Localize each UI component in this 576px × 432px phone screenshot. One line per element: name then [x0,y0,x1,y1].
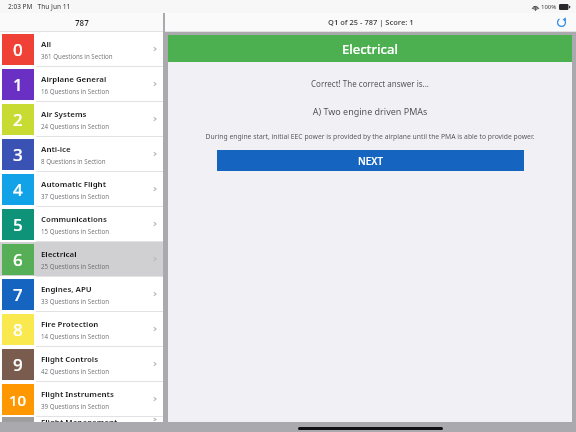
button[interactable]: 1 [0,67,163,101]
staticText: 5 [13,213,23,236]
staticText: 3 [13,143,23,166]
staticText: 14 Questions in Section [41,332,110,340]
staticText: A) Two engine driven PMAs [168,105,572,117]
staticText: 2 [13,108,23,131]
button[interactable]: Refresh [554,15,568,29]
button[interactable]: 5 [0,207,163,241]
staticText: Q1 of 25 - 787 | Score: 1 [328,17,414,27]
button[interactable]: 0 [0,32,163,66]
staticText: 8 Questions in Section [41,157,106,165]
staticText: 24 Questions in Section [41,122,110,130]
staticText: Electrical [342,40,398,58]
staticText: Air Systems [41,109,87,120]
button[interactable]: 10 [0,382,163,416]
button[interactable]: 9 [0,347,163,381]
staticText: 1 [13,73,23,96]
staticText: 8 [13,318,23,341]
staticText: 6 [13,248,23,271]
staticText: 787 [75,17,89,28]
staticText: 25 Questions in Section [41,262,110,270]
staticText: 7 [13,283,23,306]
button[interactable]: NEXT [217,150,524,171]
staticText: All [41,39,52,50]
button[interactable]: 2 [0,102,163,136]
staticText: 0 [13,38,23,61]
staticText: 42 Questions in Section [41,367,110,375]
staticText: Automatic Flight [41,179,107,190]
staticText: 361 Questions in Section [41,52,113,60]
staticText: 10 [9,390,27,410]
button[interactable]: 6 [0,242,163,276]
staticText: 100% [541,3,557,11]
button[interactable]: 7 [0,277,163,311]
button[interactable]: 4 [0,172,163,206]
staticText: 9 [13,353,23,376]
staticText: Flight Management [41,417,118,422]
staticText: Communications [41,214,107,225]
button[interactable]: 3 [0,137,163,171]
staticText: Engines, APU [41,284,92,295]
staticText: During engine start, initial EEC power i… [174,132,566,141]
staticText: Flight Instruments [41,389,114,400]
staticText: 15 Questions in Section [41,227,110,235]
staticText: NEXT [358,154,384,168]
staticText: Airplane General [41,74,107,85]
staticText: Flight Controls [41,354,99,365]
staticText: 37 Questions in Section [41,192,110,200]
staticText: 16 Questions in Section [41,87,110,95]
staticText: 33 Questions in Section [41,297,110,305]
button[interactable]: 8 [0,312,163,346]
staticText: 2:03 PM Thu Jun 11 [8,2,71,11]
staticText: Electrical [41,249,77,260]
staticText: Fire Protection [41,319,99,330]
staticText: Anti-ice [41,144,71,155]
staticText: 4 [13,178,23,201]
staticText: Correct! The correct answer is... [168,78,572,89]
staticText: 39 Questions in Section [41,402,110,410]
button[interactable]: 11 [0,417,163,422]
